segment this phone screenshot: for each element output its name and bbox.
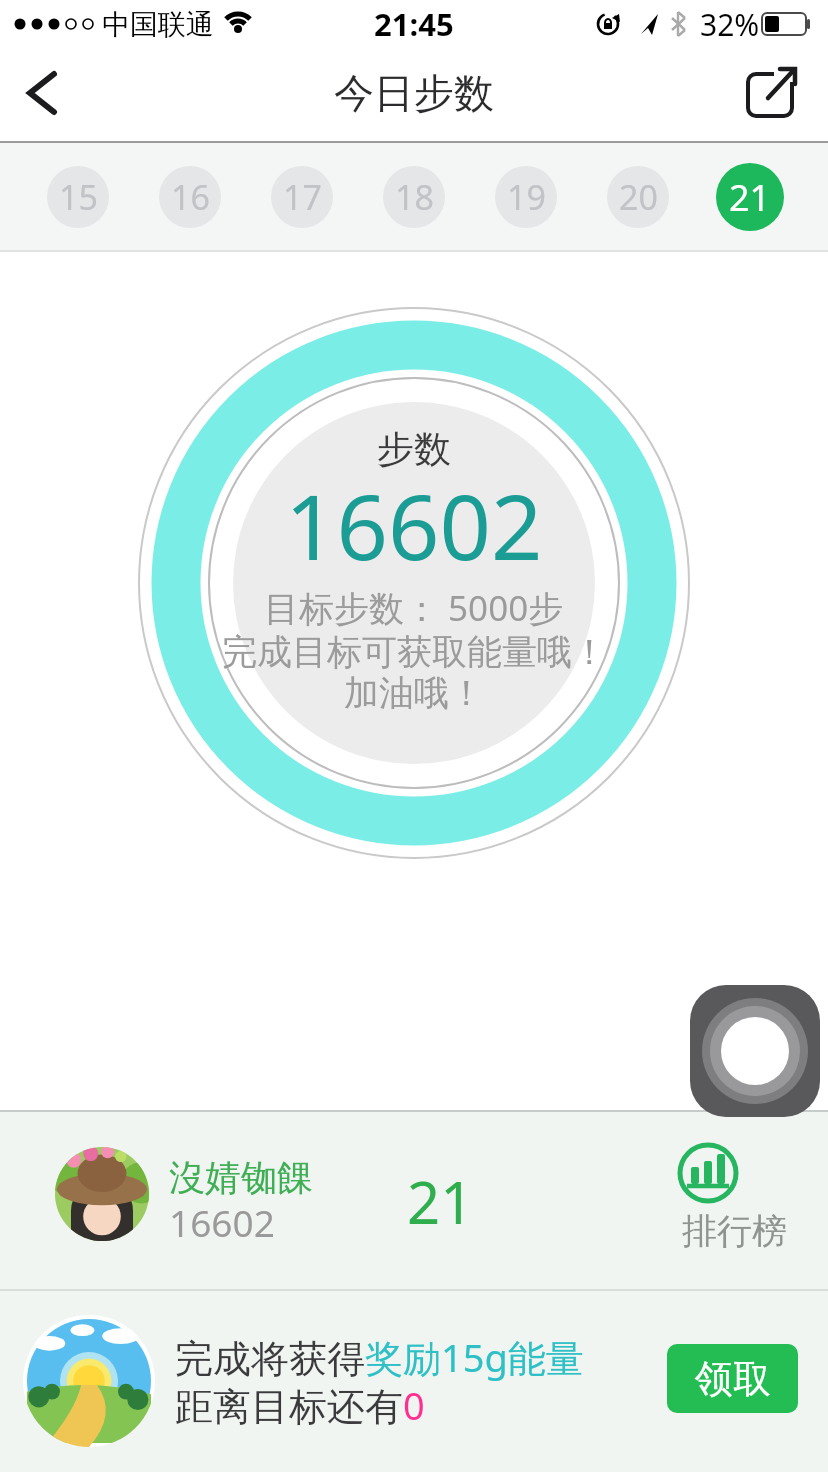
- button[interactable]: [690, 985, 820, 1117]
- button[interactable]: 17: [271, 166, 333, 228]
- button[interactable]: 18: [383, 166, 445, 228]
- staticText: 今日步数: [334, 68, 494, 118]
- staticText: 距离目标还有0: [175, 1379, 425, 1431]
- staticText: 20: [619, 174, 658, 220]
- button[interactable]: 21: [716, 163, 784, 231]
- staticText: 15: [59, 174, 98, 220]
- staticText: 21: [407, 1162, 474, 1241]
- staticText: 18: [395, 174, 434, 220]
- staticText: 16602: [285, 464, 543, 584]
- button[interactable]: 领取: [667, 1344, 798, 1413]
- button[interactable]: 16: [159, 166, 221, 228]
- staticText: 沒婧铷餜: [169, 1155, 313, 1200]
- staticText: 17: [283, 174, 322, 220]
- staticText: 完成将获得奖励15g能量: [175, 1331, 584, 1383]
- staticText: 16602: [169, 1197, 275, 1247]
- button[interactable]: 15: [47, 166, 109, 228]
- staticText: 19: [507, 174, 546, 220]
- button[interactable]: 20: [607, 166, 669, 228]
- staticText: 排行榜: [682, 1209, 787, 1253]
- staticText: 完成目标可获取能量哦！: [222, 630, 607, 674]
- staticText: 加油哦！: [344, 671, 484, 715]
- staticText: 领取: [695, 1355, 771, 1403]
- button[interactable]: [0, 1291, 828, 1472]
- staticText: 21:45: [374, 3, 454, 45]
- button[interactable]: [740, 64, 800, 122]
- staticText: 中国联通: [102, 7, 214, 42]
- button[interactable]: [670, 1135, 800, 1255]
- button[interactable]: [10, 62, 72, 124]
- button[interactable]: [0, 1112, 828, 1289]
- staticText: 16: [171, 174, 210, 220]
- staticText: 32%: [700, 4, 760, 45]
- button[interactable]: 19: [495, 166, 557, 228]
- staticText: 21: [729, 173, 771, 222]
- staticText: 步数: [377, 426, 451, 473]
- staticText: 目标步数： 5000步: [264, 584, 564, 632]
